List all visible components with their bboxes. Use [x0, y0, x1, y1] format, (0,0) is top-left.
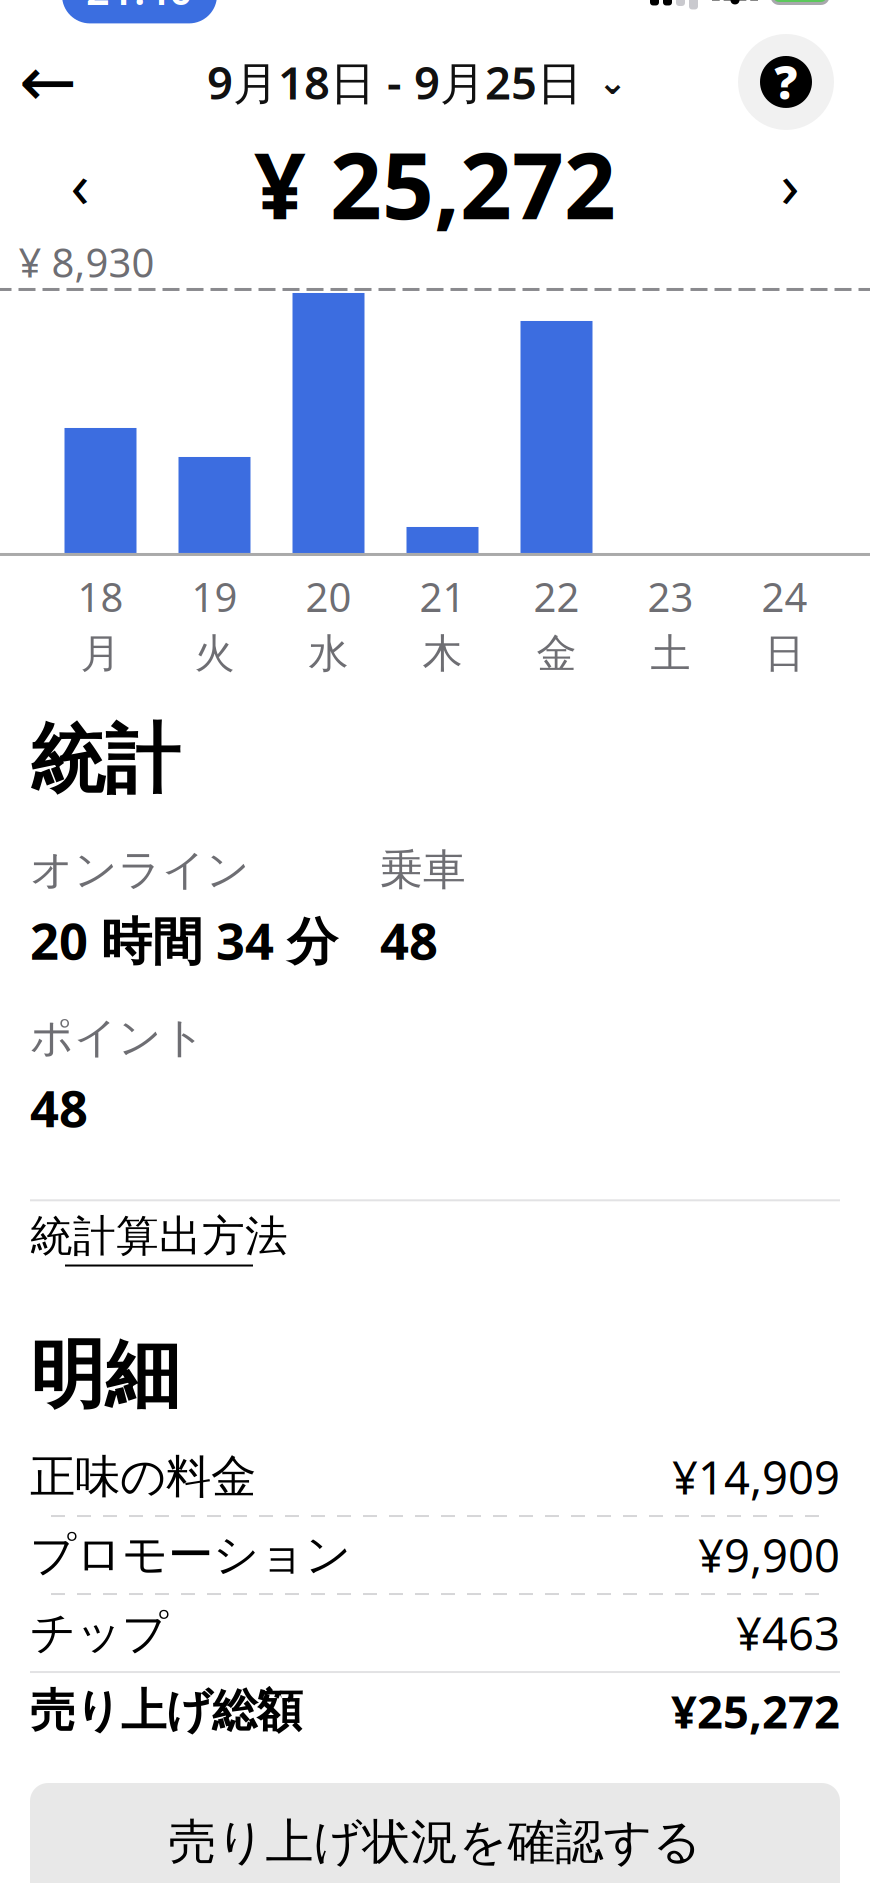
staticText: 21 — [419, 570, 465, 623]
button[interactable]: Next week — [740, 134, 840, 234]
staticText: プロモーション — [30, 1527, 351, 1583]
staticText: チップ — [30, 1605, 168, 1661]
staticText: 水 — [308, 629, 348, 678]
staticText: 21:40 — [86, 0, 193, 16]
staticText: ¥25,272 — [671, 1681, 840, 1741]
staticText: 明細 — [30, 1329, 180, 1421]
button[interactable]: 売り上げ状況を確認する — [30, 1783, 840, 1883]
staticText: ¥9,900 — [698, 1525, 840, 1585]
staticText: 23 — [647, 570, 693, 623]
staticText: 木 — [422, 629, 462, 678]
button[interactable]: 統計算出方法 — [30, 1201, 840, 1275]
staticText: 統計算出方法 — [30, 1210, 288, 1262]
staticText: ‹ — [70, 143, 89, 225]
staticText: 土 — [650, 629, 690, 678]
staticText: ポイント — [30, 1012, 206, 1064]
staticText: ? — [774, 52, 797, 112]
staticText: 火 — [194, 629, 234, 678]
staticText: 18 — [77, 570, 123, 623]
staticText: ¥ 25,272 — [254, 124, 616, 244]
staticText: 日 — [764, 629, 804, 678]
staticText: 48 — [30, 1074, 88, 1141]
staticText: ⌄ — [598, 62, 627, 102]
staticText: 20 — [305, 570, 351, 623]
staticText: 売り上げ総額 — [30, 1683, 302, 1739]
staticText: オンライン — [30, 844, 250, 896]
staticText: 統計 — [30, 714, 180, 806]
button[interactable]: Back — [0, 34, 96, 130]
staticText: ¥14,909 — [672, 1447, 840, 1507]
staticText: 金 — [536, 629, 576, 678]
staticText: ¥ 8,930 — [18, 235, 154, 288]
staticText: ⚡︎ — [789, 0, 810, 6]
staticText: ¥463 — [736, 1603, 840, 1663]
staticText: 22 — [533, 570, 579, 623]
staticText: 月 — [80, 629, 120, 678]
staticText: 売り上げ状況を確認する — [168, 1812, 701, 1871]
staticText: ← — [19, 43, 77, 121]
staticText: 19 — [191, 570, 237, 623]
staticText: 正味の料金 — [30, 1449, 256, 1505]
staticText: 48 — [380, 906, 438, 974]
button[interactable]: Help — [738, 34, 834, 130]
staticText: 9月18日 - 9月25日 — [207, 52, 582, 112]
button[interactable]: 9月18日 - 9月25日 — [199, 34, 635, 130]
button[interactable]: Previous week — [30, 134, 130, 234]
staticText: 20 時間 34 分 — [30, 906, 338, 974]
staticText: › — [780, 143, 799, 225]
staticText: 24 — [761, 570, 807, 623]
staticText: 乗車 — [380, 844, 466, 896]
